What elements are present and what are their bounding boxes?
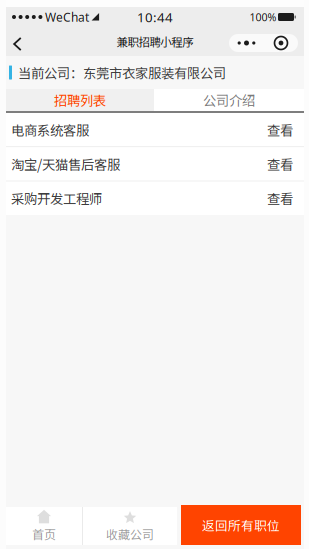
- staticText: 首页: [32, 525, 56, 543]
- staticText: WeChat: [45, 9, 89, 25]
- button[interactable]: 收藏公司: [83, 507, 177, 545]
- button[interactable]: 返回所有职位: [181, 505, 301, 545]
- staticText: 兼职招聘小程序: [116, 33, 193, 50]
- button[interactable]: 电商系统客服: [6, 113, 304, 146]
- staticText: 查看: [267, 189, 293, 208]
- button[interactable]: 淘宝/天猫售后客服: [6, 147, 304, 181]
- button[interactable]: Close: [264, 34, 298, 52]
- button[interactable]: 采购开发工程师: [6, 182, 304, 215]
- staticText: 收藏公司: [106, 525, 154, 543]
- button[interactable]: More: [229, 34, 264, 52]
- button[interactable]: 招聘列表: [6, 89, 154, 111]
- staticText: 返回所有职位: [202, 516, 280, 534]
- staticText: 淘宝/天猫售后客服: [11, 154, 120, 174]
- button[interactable]: Back: [6, 27, 29, 56]
- button[interactable]: 首页: [6, 507, 82, 545]
- staticText: 采购开发工程师: [11, 189, 102, 208]
- staticText: 查看: [267, 154, 293, 174]
- staticText: 查看: [267, 120, 293, 139]
- staticText: 10:44: [137, 8, 173, 26]
- staticText: 100%: [249, 10, 276, 24]
- staticText: 电商系统客服: [11, 120, 89, 139]
- staticText: 招聘列表: [54, 90, 106, 110]
- staticText: 公司介绍: [203, 90, 255, 110]
- staticText: 当前公司：东莞市衣家服装有限公司: [18, 63, 226, 82]
- button[interactable]: 公司介绍: [154, 89, 304, 111]
